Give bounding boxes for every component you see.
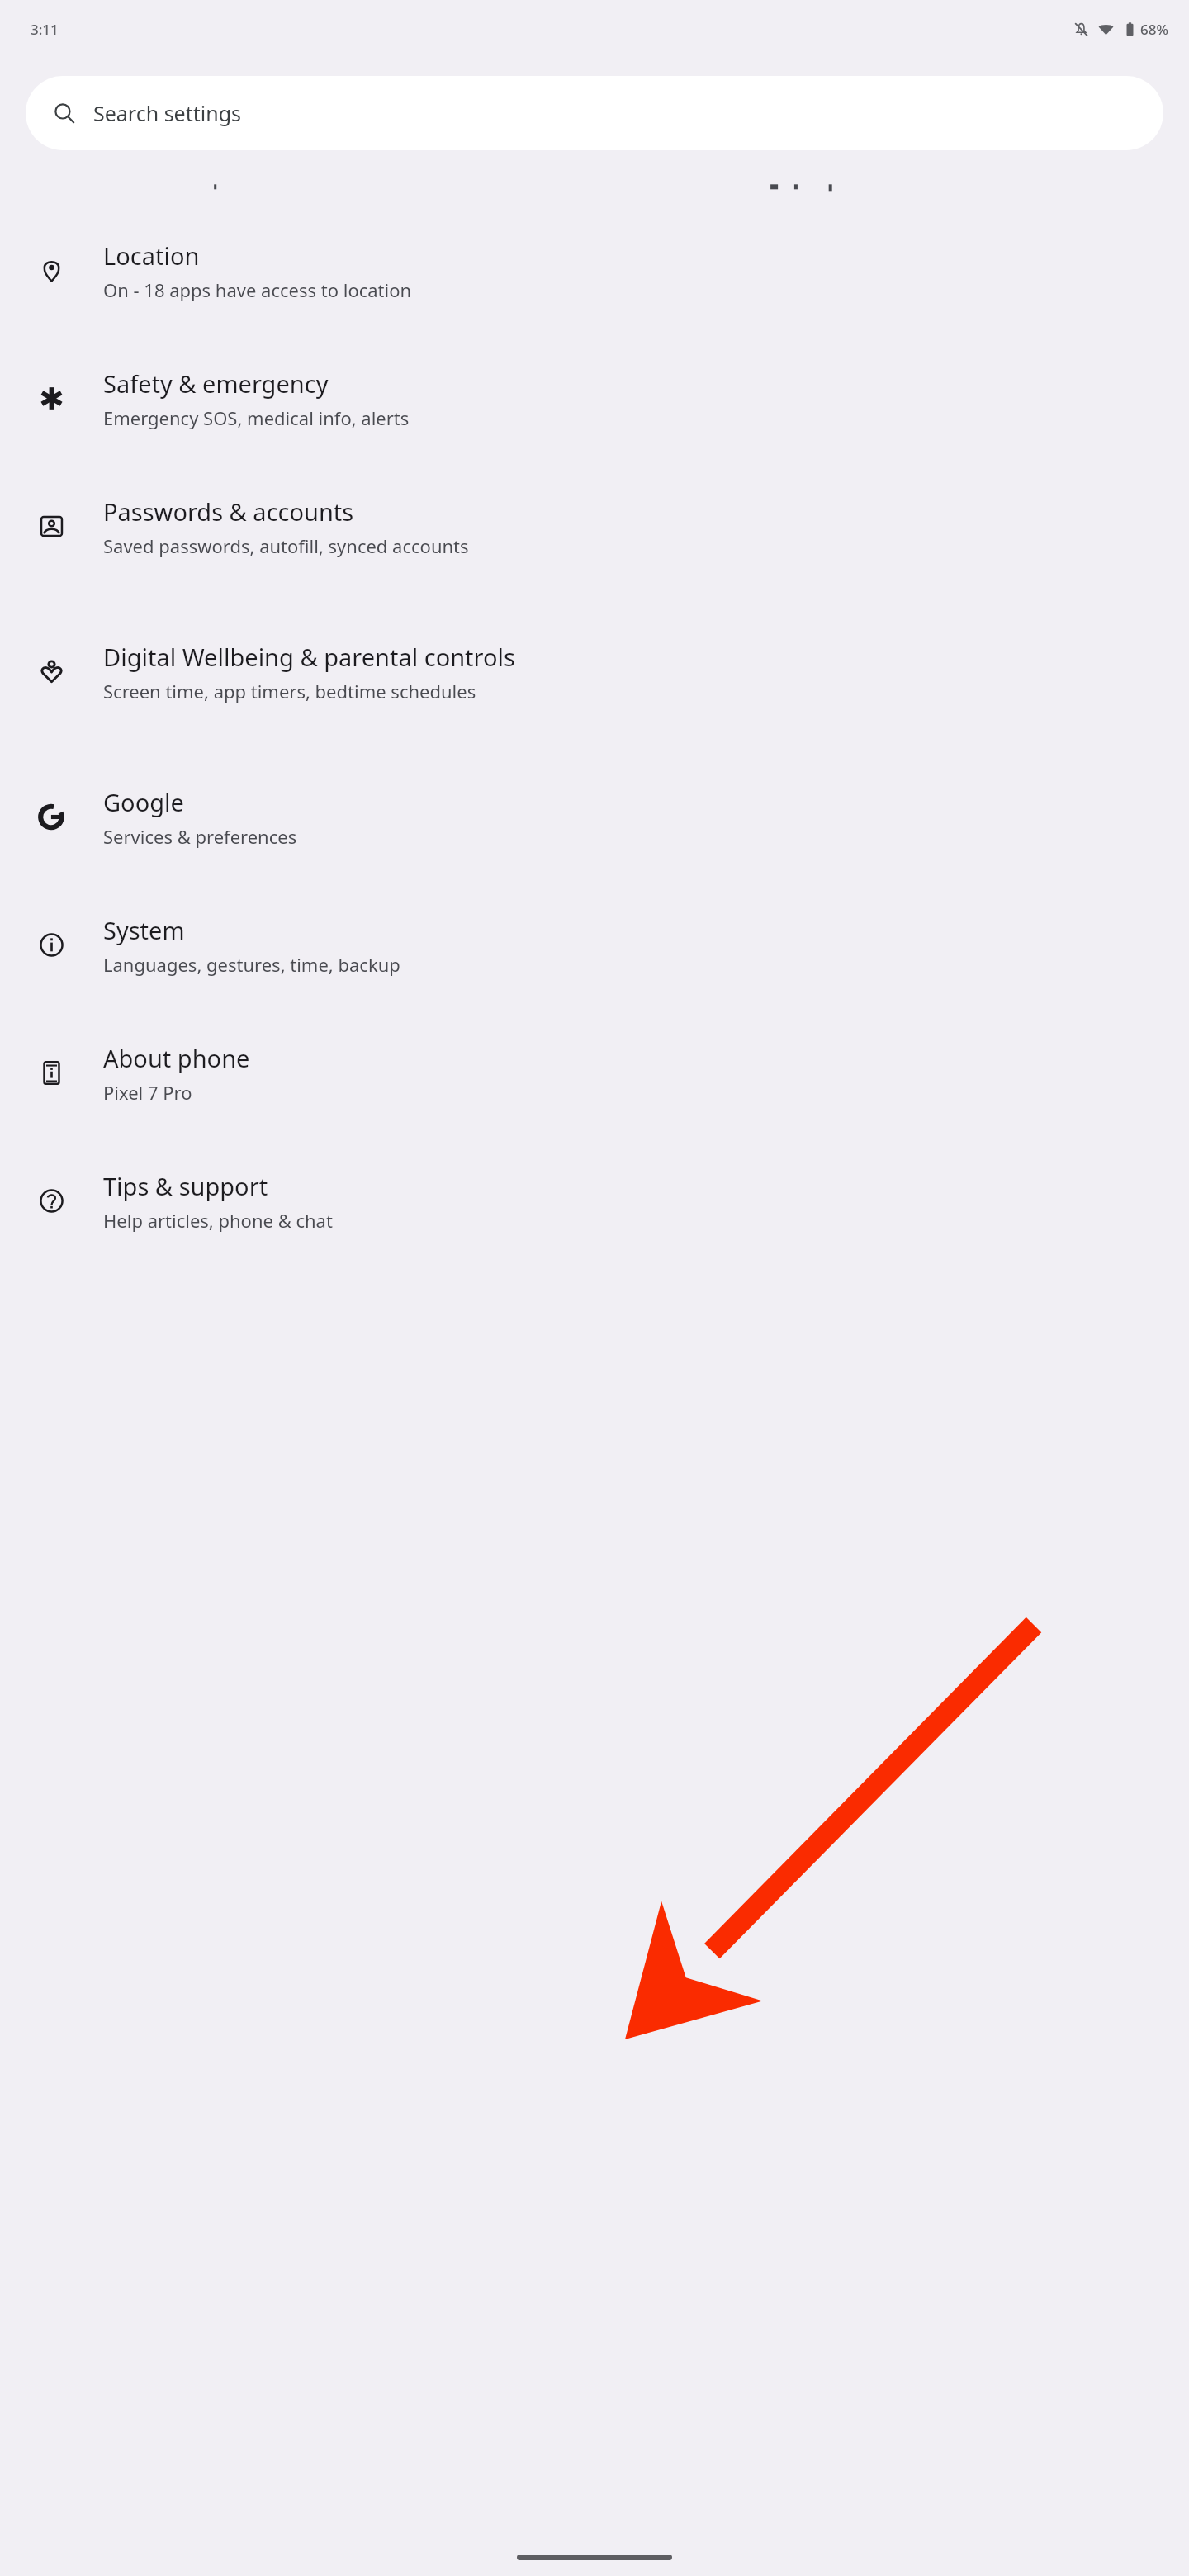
button[interactable]: Google [0, 753, 1189, 881]
staticText: Services & preferences [103, 824, 297, 849]
staticText: System [103, 914, 185, 946]
button[interactable]: About phone [0, 1009, 1189, 1137]
staticText: 3:11 [31, 20, 59, 39]
staticText: Saved passwords, autofill, synced accoun… [103, 533, 469, 558]
staticText: 68% [1140, 20, 1168, 39]
button[interactable]: Safety & emergency [0, 334, 1189, 462]
button[interactable]: Location [0, 206, 1189, 334]
button[interactable]: Passwords & accounts [0, 462, 1189, 590]
staticText: Tips & support [103, 1170, 268, 1202]
staticText: Languages, gestures, time, backup [103, 952, 400, 977]
staticText: Safety & emergency [103, 367, 329, 400]
button[interactable]: Digital Wellbeing & parental controls [0, 590, 1189, 753]
staticText: Google [103, 786, 184, 818]
staticText: Location [103, 239, 200, 272]
staticText: Pixel 7 Pro [103, 1080, 192, 1105]
button[interactable]: System [0, 881, 1189, 1009]
staticText: Emergency SOS, medical info, alerts [103, 405, 410, 430]
button[interactable]: Tips & support [0, 1137, 1189, 1265]
staticText: Digital Wellbeing & parental controls [103, 641, 515, 673]
staticText: About phone [103, 1042, 250, 1074]
staticText: Passwords & accounts [103, 495, 354, 528]
staticText: Help articles, phone & chat [103, 1208, 333, 1233]
staticText: On - 18 apps have access to location [103, 277, 412, 302]
button[interactable]: Search settings [26, 76, 1163, 150]
staticText: Search settings [93, 99, 242, 127]
staticText: Screen time, app timers, bedtime schedul… [103, 679, 476, 703]
